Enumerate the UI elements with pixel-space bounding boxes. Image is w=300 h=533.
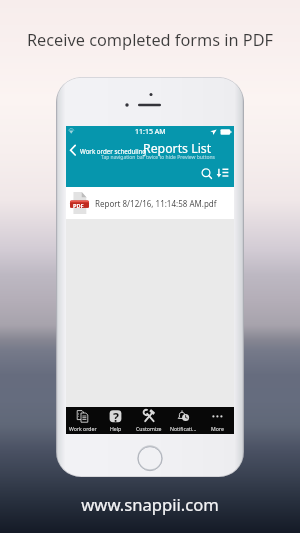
staticText: Reports List — [143, 140, 212, 157]
staticText: Report 8/12/16, 11:14:58 AM.pdf — [95, 198, 217, 209]
staticText: 11:15 AM — [135, 127, 166, 137]
staticText: Notificati... — [170, 425, 197, 432]
button[interactable]: Back — [67, 143, 81, 157]
staticText: Receive completed forms in PDF — [0, 29, 300, 51]
staticText: Work order scheduling — [80, 147, 147, 155]
staticText: Help — [110, 425, 122, 432]
staticText: Customize — [136, 425, 162, 432]
button[interactable]: ? — [99, 407, 132, 434]
button[interactable]: Notificati... — [166, 407, 200, 434]
button[interactable]: Search — [200, 167, 215, 182]
staticText: ? — [113, 409, 119, 424]
button[interactable]: Work order — [66, 407, 99, 434]
staticText: www.snappii.com — [0, 493, 300, 516]
button[interactable]: Customize — [132, 407, 166, 434]
staticText: Work order — [69, 425, 97, 432]
button[interactable]: PDF — [66, 187, 234, 219]
staticText: Tap navigation bar twice to hide Preview… — [74, 154, 242, 161]
button[interactable]: More — [200, 407, 234, 434]
staticText: PDF — [73, 202, 84, 209]
staticText: More — [211, 425, 224, 432]
button[interactable]: Sort — [216, 167, 231, 182]
